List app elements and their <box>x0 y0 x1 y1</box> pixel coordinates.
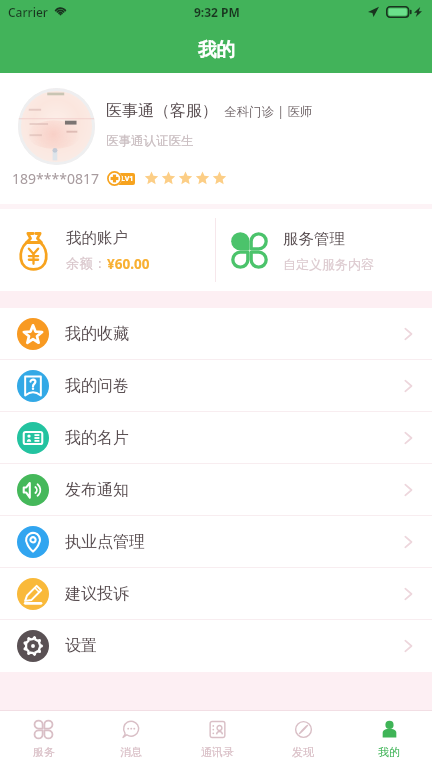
staticText: 医事通（客服） <box>106 101 218 121</box>
staticText: 消息 <box>120 745 142 759</box>
staticText: 服务管理 <box>283 229 345 249</box>
staticText: 设置 <box>65 636 97 656</box>
button[interactable]: 发现 <box>260 711 346 767</box>
staticText: 通讯录 <box>201 745 234 759</box>
button[interactable]: 我的名片 <box>0 412 432 464</box>
button[interactable]: 我的 <box>346 711 432 767</box>
staticText: 医事通认证医生 <box>106 133 194 149</box>
staticText: 发布通知 <box>65 480 129 500</box>
button[interactable]: 我的问卷 <box>0 360 432 412</box>
staticText: 我的账户 <box>66 228 128 248</box>
button[interactable]: 我的账户 <box>0 209 215 291</box>
staticText: 我的 <box>378 745 400 759</box>
staticText: 我的收藏 <box>65 324 129 344</box>
staticText: LV1 <box>121 174 134 184</box>
staticText: 执业点管理 <box>65 532 145 552</box>
staticText: 建议投诉 <box>65 584 129 604</box>
staticText: 我的 <box>198 38 235 61</box>
staticText: Carrier <box>8 4 48 20</box>
staticText: 我的问卷 <box>65 376 129 396</box>
staticText: ¥60.00 <box>107 255 150 273</box>
staticText: 服务 <box>33 745 55 759</box>
button[interactable]: 执业点管理 <box>0 516 432 568</box>
button[interactable]: 服务 <box>0 711 87 767</box>
staticText: 余额： <box>66 255 107 272</box>
staticText: 发现 <box>292 745 314 759</box>
button[interactable]: 我的收藏 <box>0 308 432 360</box>
button[interactable]: 服务管理 <box>216 209 432 291</box>
button[interactable]: 发布通知 <box>0 464 432 516</box>
staticText: 189****0817 <box>12 169 99 188</box>
button[interactable]: 医事通（客服） <box>0 73 432 204</box>
button[interactable]: 消息 <box>87 711 174 767</box>
staticText: 我的名片 <box>65 428 129 448</box>
staticText: 全科门诊 | 医师 <box>224 103 313 120</box>
staticText: 自定义服务内容 <box>283 256 374 272</box>
staticText: 9:32 PM <box>194 4 240 20</box>
button[interactable]: 建议投诉 <box>0 568 432 620</box>
button[interactable]: 通讯录 <box>174 711 260 767</box>
button[interactable]: 设置 <box>0 620 432 672</box>
